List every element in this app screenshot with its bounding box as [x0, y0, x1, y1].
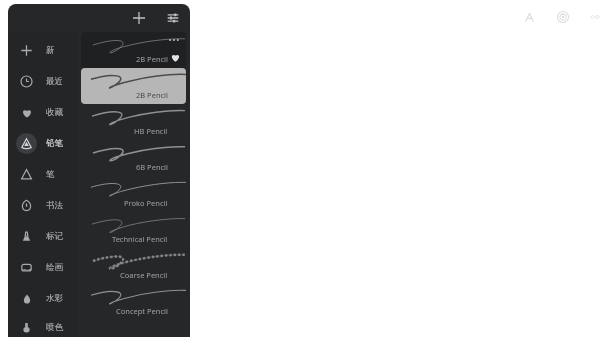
button[interactable]: Favorite: [169, 51, 182, 64]
button[interactable]: More: [588, 8, 600, 26]
button[interactable]: 水彩: [8, 283, 78, 314]
staticText: Proko Pencil: [124, 198, 168, 208]
button[interactable]: 6B Pencil: [81, 140, 186, 176]
staticText: 标记: [46, 231, 63, 242]
staticText: 书法: [46, 200, 63, 211]
button[interactable]: Proko Pencil: [81, 176, 186, 212]
staticText: 笔: [46, 169, 55, 180]
button[interactable]: 新: [8, 35, 78, 66]
button[interactable]: 收藏: [8, 97, 78, 128]
button[interactable]: More options: [168, 37, 180, 43]
button[interactable]: Brush settings: [162, 7, 184, 29]
button[interactable]: 最近: [8, 66, 78, 97]
button[interactable]: 书法: [8, 190, 78, 221]
staticText: 喷色: [46, 322, 63, 333]
button[interactable]: 2B Pencil: [81, 32, 186, 68]
button[interactable]: 喷色: [8, 314, 78, 337]
button[interactable]: 绘画: [8, 252, 78, 283]
staticText: 2B Pencil: [136, 54, 168, 64]
staticText: 最近: [46, 76, 63, 87]
staticText: Technical Pencil: [112, 234, 168, 244]
staticText: HB Pencil: [134, 126, 168, 136]
staticText: 6B Pencil: [136, 162, 168, 172]
button[interactable]: HB Pencil: [81, 104, 186, 140]
button[interactable]: Adjustments: [520, 8, 538, 26]
button[interactable]: Concept Pencil: [81, 284, 186, 320]
button[interactable]: Technical Pencil: [81, 212, 186, 248]
button[interactable]: 铅笔: [8, 128, 78, 159]
button[interactable]: New brush: [128, 7, 150, 29]
staticText: Concept Pencil: [116, 306, 168, 316]
staticText: 收藏: [46, 107, 63, 118]
staticText: 2B Pencil: [136, 90, 168, 100]
button[interactable]: 2B Pencil: [81, 68, 186, 104]
staticText: 铅笔: [46, 138, 63, 149]
staticText: 新: [46, 45, 55, 56]
staticText: Coarse Pencil: [120, 270, 168, 280]
button[interactable]: 笔: [8, 159, 78, 190]
button[interactable]: Coarse Pencil: [81, 248, 186, 284]
staticText: 水彩: [46, 293, 63, 304]
button[interactable]: 标记: [8, 221, 78, 252]
button[interactable]: Settings: [554, 8, 572, 26]
staticText: 绘画: [46, 262, 63, 273]
